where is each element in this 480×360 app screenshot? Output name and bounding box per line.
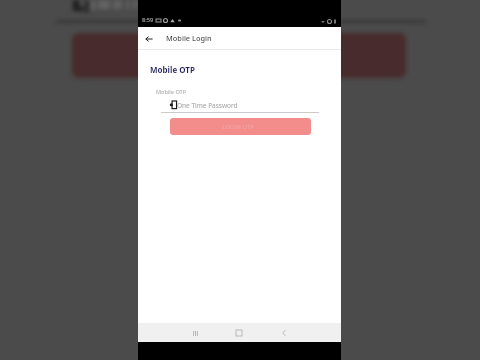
staticText: 8:59 <box>142 16 154 24</box>
staticText: Mobile OTP <box>150 64 195 75</box>
button[interactable]: Recent apps <box>187 325 203 341</box>
button[interactable]: Back <box>142 32 156 46</box>
button[interactable]: Back <box>276 325 292 341</box>
button[interactable]: LOGIN OTP <box>170 118 311 135</box>
staticText: One Time Password <box>177 101 238 110</box>
staticText: Mobile Login <box>166 33 212 43</box>
staticText: LOGIN OTP <box>222 123 254 131</box>
button[interactable]: Home <box>231 325 247 341</box>
staticText: Mobile OTP <box>156 88 187 96</box>
